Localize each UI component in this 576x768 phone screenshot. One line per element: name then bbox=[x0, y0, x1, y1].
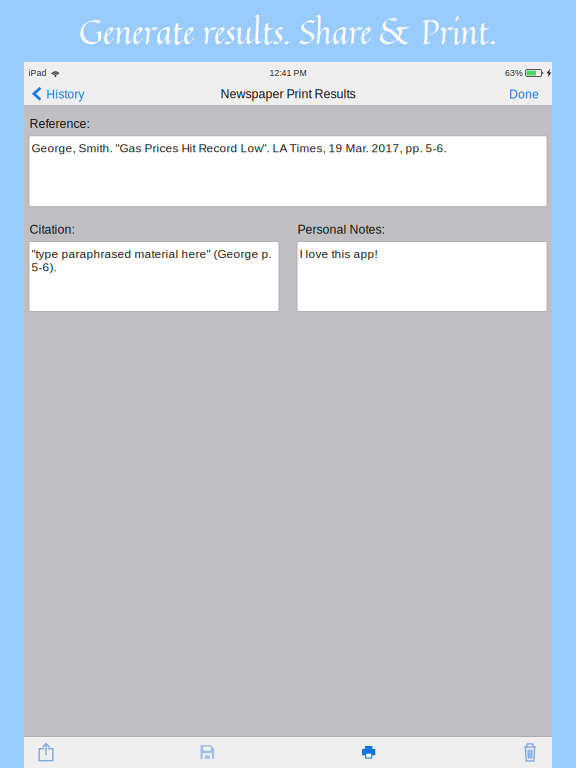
button[interactable]: Delete bbox=[508, 736, 552, 768]
staticText: 63% bbox=[505, 68, 523, 78]
button[interactable]: Done bbox=[500, 84, 552, 106]
button[interactable]: History bbox=[24, 84, 93, 106]
staticText: "type paraphrased material here" (George… bbox=[31, 247, 271, 274]
staticText: Citation: bbox=[29, 223, 74, 236]
button[interactable]: Share bbox=[24, 736, 68, 768]
staticText: Generate results. Share & Print. bbox=[79, 7, 497, 57]
staticText: iPad bbox=[28, 68, 46, 78]
staticText: Done bbox=[509, 87, 539, 101]
staticText: I love this app! bbox=[299, 247, 377, 260]
button[interactable]: Print bbox=[347, 736, 391, 768]
button[interactable]: Save bbox=[185, 736, 229, 768]
staticText: Reference: bbox=[29, 117, 89, 131]
staticText: Personal Notes: bbox=[297, 223, 384, 236]
staticText: History bbox=[46, 87, 84, 101]
staticText: Newspaper Print Results bbox=[220, 87, 355, 101]
staticText: 12:41 PM bbox=[269, 68, 306, 78]
staticText: George, Smith. "Gas Prices Hit Record Lo… bbox=[31, 142, 446, 155]
